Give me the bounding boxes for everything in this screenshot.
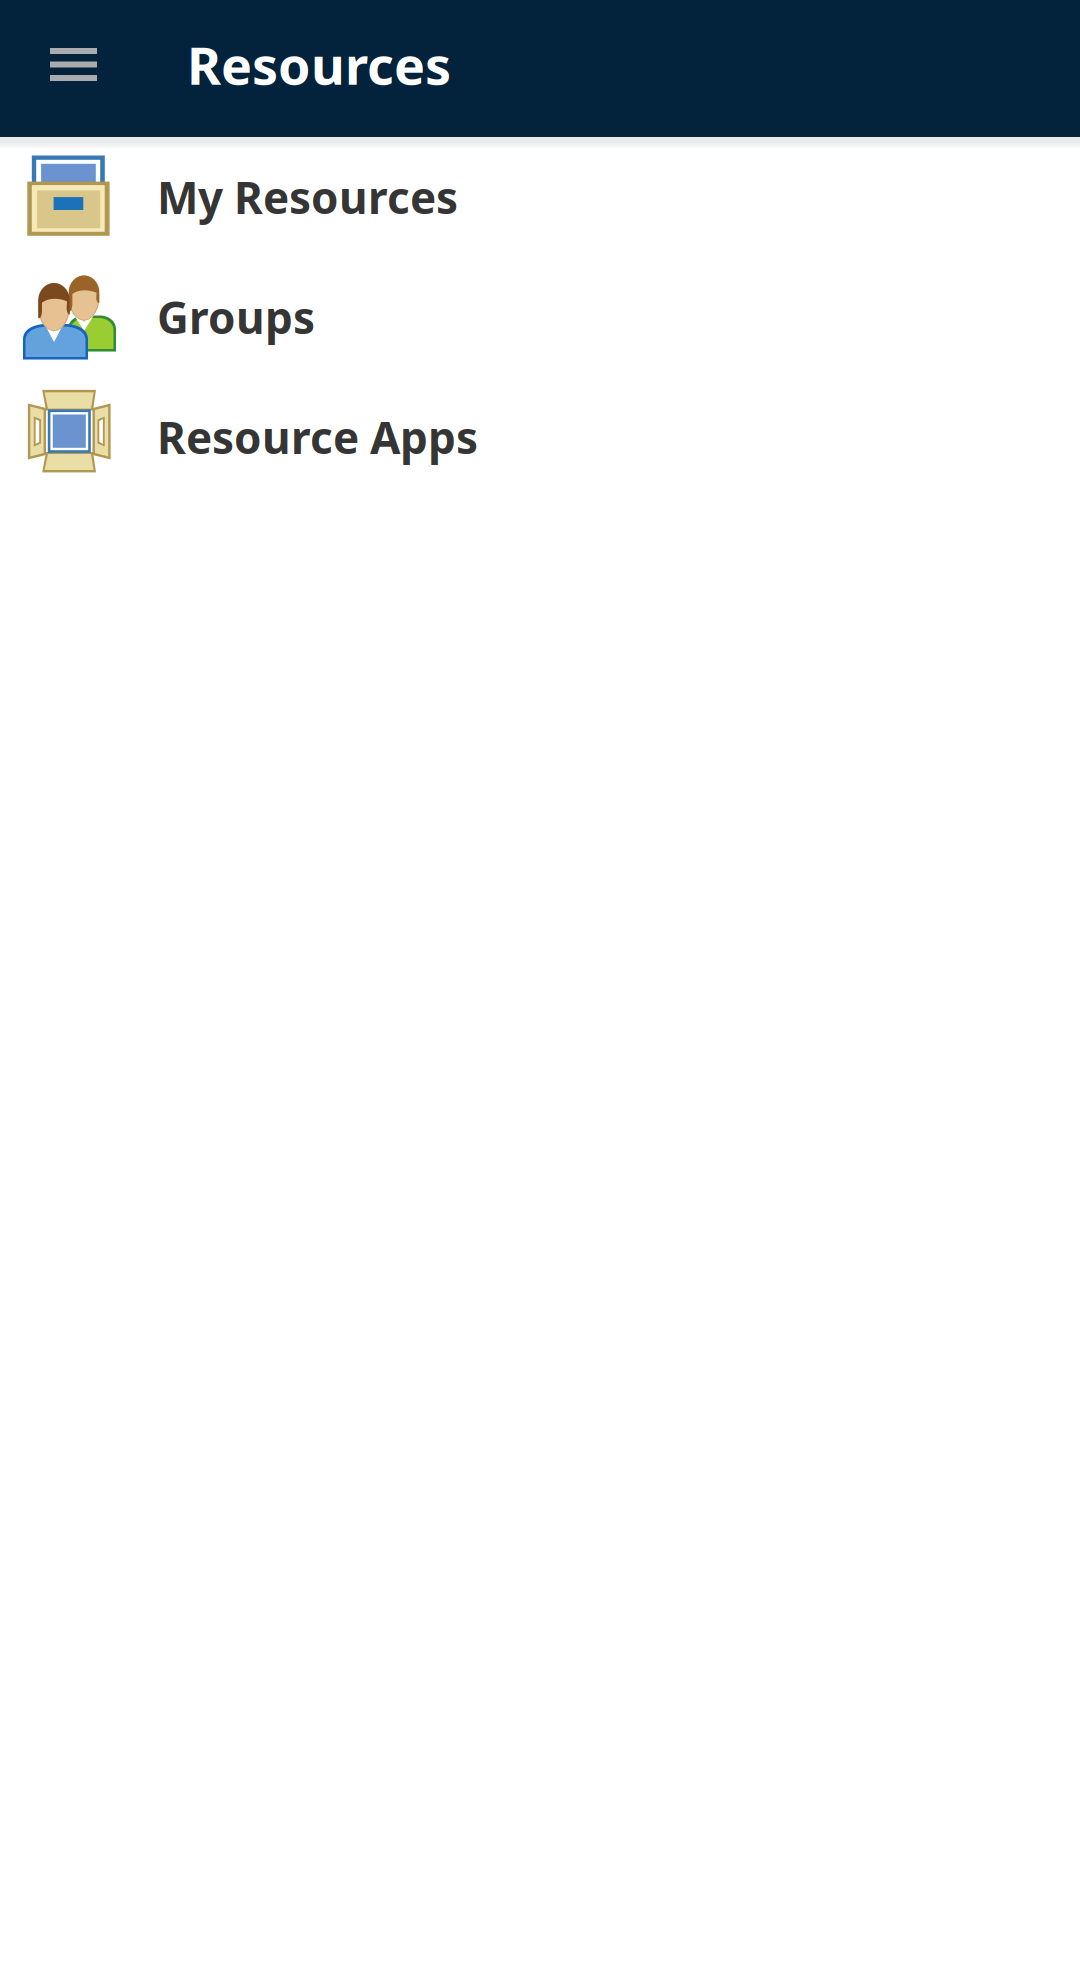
button[interactable]: Groups [0,257,1080,377]
staticText: My Resources [157,168,458,226]
staticText: Resource Apps [157,408,478,466]
button[interactable]: My Resources [0,137,1080,257]
staticText: Groups [157,288,315,346]
staticText: Resources [187,30,451,99]
button[interactable]: Resource Apps [0,377,1080,497]
button[interactable]: Menu [0,0,187,133]
